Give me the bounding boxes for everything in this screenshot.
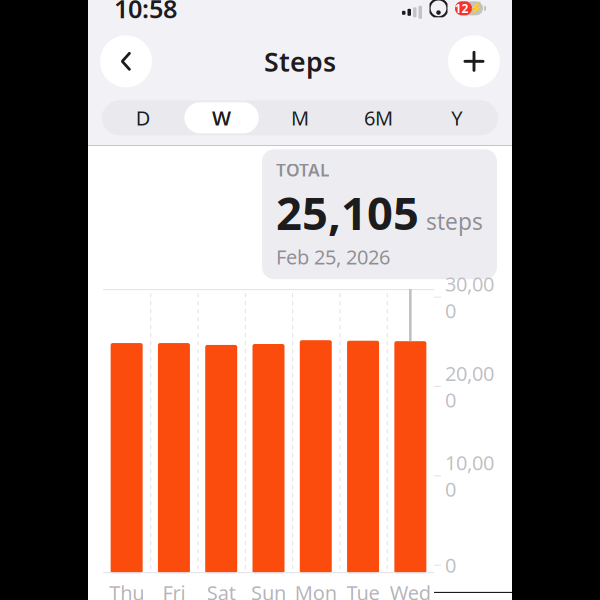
staticText: 10,000 — [445, 449, 494, 502]
button[interactable]: Y — [418, 100, 496, 135]
staticText: 12 — [454, 0, 468, 16]
staticText: Steps — [264, 44, 336, 79]
staticText: Sat — [207, 579, 236, 600]
staticText: M — [291, 105, 309, 131]
button[interactable]: Back — [100, 35, 152, 87]
button[interactable]: 6M — [339, 100, 418, 135]
staticText: steps — [426, 206, 483, 236]
button[interactable]: D — [104, 100, 182, 135]
staticText: 30,000 — [445, 270, 494, 324]
staticText: Feb 25, 2026 — [276, 243, 390, 270]
staticText: 0 — [445, 552, 456, 578]
staticText: 25,105 — [276, 182, 419, 242]
staticText: 20,000 — [445, 360, 494, 413]
staticText: Sun — [251, 579, 286, 600]
staticText: 6M — [364, 105, 393, 131]
staticText: D — [136, 105, 151, 131]
staticText: 10:58 — [114, 0, 177, 25]
staticText: TOTAL — [276, 158, 329, 181]
staticText: Mon — [295, 579, 337, 600]
button[interactable]: Add data — [448, 35, 500, 87]
staticText: Tue — [347, 579, 380, 600]
staticText: Y — [451, 105, 462, 131]
staticText: ⚡ — [468, 1, 483, 15]
staticText: Wed — [390, 579, 431, 600]
button[interactable]: W — [182, 100, 261, 135]
staticText: Fri — [162, 579, 185, 600]
staticText: W — [212, 105, 231, 131]
staticText: Thu — [109, 579, 144, 600]
button[interactable]: M — [261, 100, 339, 135]
